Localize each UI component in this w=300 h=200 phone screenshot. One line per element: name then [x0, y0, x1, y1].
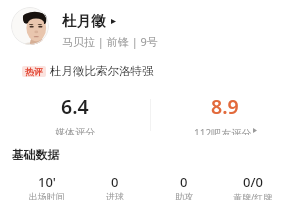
- staticText: 杜月徵比索尔洛特强: [50, 64, 154, 78]
- staticText: 热评: [25, 66, 43, 77]
- staticText: 出场时间: [29, 191, 65, 200]
- button[interactable]: 8.9: [150, 93, 300, 135]
- staticText: 6.4: [61, 93, 89, 120]
- staticText: 112吧友评分: [194, 126, 252, 135]
- button[interactable]: Player profile photo: [11, 7, 49, 45]
- button[interactable]: 6.4: [0, 93, 150, 135]
- button[interactable]: 0/0: [218, 173, 287, 200]
- staticText: 媒体评分: [55, 126, 95, 135]
- button[interactable]: 10': [13, 173, 81, 200]
- staticText: 进球: [106, 191, 124, 200]
- staticText: 0/0: [243, 173, 263, 191]
- staticText: 0: [111, 173, 119, 191]
- staticText: 马贝拉 | 前锋 | 9号: [62, 34, 158, 49]
- button[interactable]: 0: [81, 173, 149, 200]
- staticText: 0: [180, 173, 188, 191]
- button[interactable]: 0: [149, 173, 218, 200]
- staticText: 10': [38, 173, 56, 191]
- button[interactable]: 杜月徵: [62, 12, 116, 30]
- staticText: 杜月徵: [62, 12, 106, 30]
- staticText: 8.9: [211, 93, 239, 120]
- button[interactable]: 热评: [22, 64, 154, 78]
- staticText: 黄牌/红牌: [233, 191, 273, 200]
- staticText: 基础数据: [12, 148, 60, 163]
- staticText: 助攻: [175, 191, 193, 200]
